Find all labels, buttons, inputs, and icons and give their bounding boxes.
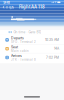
staticText: On time · Gate B12	[13, 30, 41, 34]
button[interactable]: Seat	[0, 44, 64, 53]
button[interactable]: Departs	[0, 36, 64, 44]
staticText: Arrives	[11, 54, 22, 58]
staticText: 10:35 AM	[45, 38, 59, 42]
staticText: 9:41	[3, 0, 10, 5]
staticText: SFO · Terminal 2	[11, 40, 36, 44]
staticText: 14A	[54, 47, 59, 51]
staticText: Flight AA 118	[19, 5, 45, 10]
staticText: 7:02 PM	[46, 56, 59, 59]
button[interactable]: Trips	[0, 5, 17, 10]
staticText: Departs	[11, 36, 24, 40]
staticText: JFK · Terminal 8	[11, 58, 36, 61]
button[interactable]: Arrives	[0, 53, 64, 62]
staticText: Main cabin	[11, 49, 29, 53]
staticText: Seat	[11, 45, 18, 49]
staticText: Trips	[5, 5, 14, 9]
